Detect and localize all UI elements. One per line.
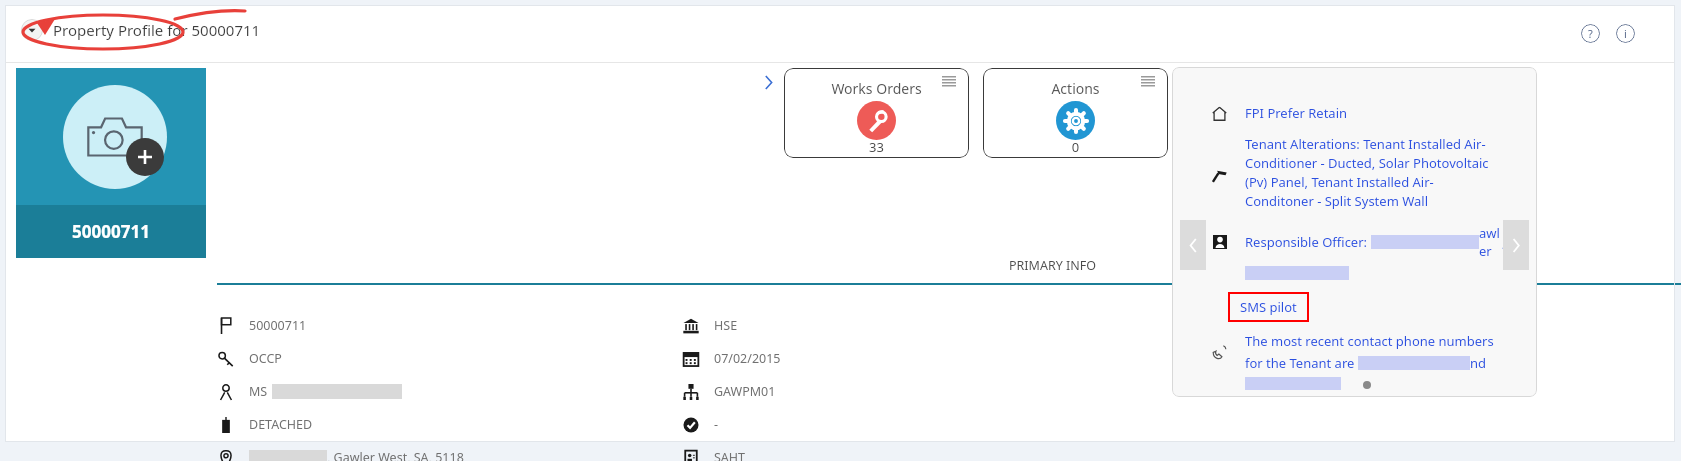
button[interactable]: The most recent contact phone numbers <box>1212 332 1494 390</box>
button[interactable]: PRIMARY INFO <box>217 253 1681 285</box>
staticText: PRIMARY INFO <box>1009 257 1096 274</box>
staticText: FPI Prefer Retain <box>1245 104 1348 122</box>
staticText: The most recent contact phone numbers <box>1245 332 1494 350</box>
staticText: 07/02/2015 <box>714 350 781 367</box>
button[interactable]: Tenant Alterations: Tenant Installed Air… <box>1212 135 1502 215</box>
staticText: Responsible Officer: <box>1245 233 1371 251</box>
button[interactable]: Information <box>1616 24 1635 43</box>
other: Back <box>21 19 43 41</box>
staticText: - <box>714 416 719 433</box>
button[interactable]: FPI Prefer Retain <box>1212 104 1348 122</box>
button[interactable]: Add property photo <box>16 68 206 258</box>
button[interactable]: Next <box>757 69 779 95</box>
button[interactable]: SMS pilot <box>1228 292 1309 322</box>
staticText: SAHT <box>714 449 746 461</box>
staticText: , Gawler West, SA, 5118 <box>327 449 464 461</box>
staticText: Tenant Alterations: Tenant Installed Air… <box>1245 135 1502 210</box>
button[interactable]: Previous <box>1180 220 1206 270</box>
button[interactable]: Responsible Officer: <box>1212 224 1502 280</box>
staticText: Property Profile for 50000711 <box>53 20 261 40</box>
button[interactable]: Help <box>1581 24 1600 43</box>
staticText: MS <box>249 383 268 400</box>
staticText: SMS pilot <box>1240 298 1297 316</box>
staticText: i <box>1624 26 1627 41</box>
button[interactable]: Next <box>1503 220 1529 270</box>
button[interactable]: Actions <box>983 68 1168 158</box>
staticText: ? <box>1588 26 1593 41</box>
staticText: 50000711 <box>16 220 206 243</box>
staticText: 50000711 <box>249 317 307 334</box>
staticText: GAWPM01 <box>714 383 776 400</box>
staticText: DETACHED <box>249 416 313 433</box>
staticText: awler <box>1479 224 1502 260</box>
staticText: for the Tenant are <box>1245 354 1358 372</box>
staticText: Works Orders <box>784 79 969 98</box>
button[interactable]: Works Orders <box>784 68 969 158</box>
staticText: 33 <box>784 138 969 156</box>
staticText: 0 <box>983 138 1168 156</box>
staticText: HSE <box>714 317 738 334</box>
staticText: OCCP <box>249 350 282 367</box>
staticText: nd <box>1470 354 1487 372</box>
staticText: Actions <box>983 79 1168 98</box>
button[interactable]: Back <box>21 19 261 41</box>
